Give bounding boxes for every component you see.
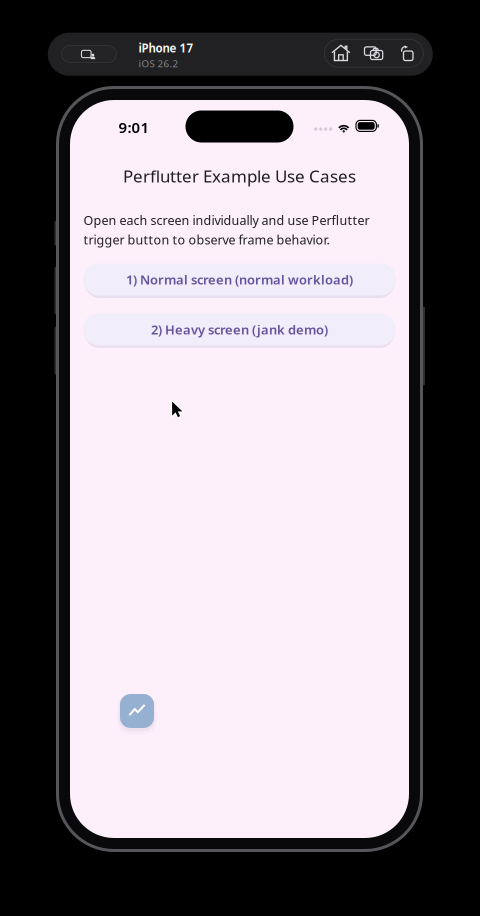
button[interactable]: Home (324, 39, 357, 67)
button[interactable]: Rotate (390, 39, 423, 67)
button[interactable]: Screenshot (357, 39, 390, 67)
button[interactable]: 2) Heavy screen (jank demo) (83, 313, 396, 345)
staticText: 1) Normal screen (normal workload) (126, 271, 353, 288)
staticText: 2) Heavy screen (jank demo) (151, 321, 328, 338)
staticText: Open each screen individually and use Pe… (83, 211, 369, 229)
staticText: trigger button to observe frame behavior… (83, 231, 329, 248)
staticText: Perflutter Example Use Cases (123, 164, 356, 188)
button[interactable]: 1) Normal screen (normal workload) (83, 263, 396, 295)
button[interactable]: Toggle performance overlay (120, 694, 154, 728)
staticText: iPhone 17 (138, 40, 193, 56)
staticText: iOS 26.2 (138, 57, 178, 70)
staticText: 9:01 (119, 117, 150, 137)
button[interactable]: Device picker (61, 45, 116, 62)
